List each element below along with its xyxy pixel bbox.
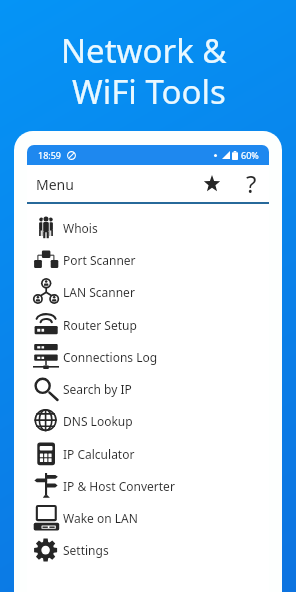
staticText: 60%: [241, 149, 259, 161]
button[interactable]: LAN Scanner: [27, 276, 269, 308]
staticText: IP & Host Converter: [63, 478, 175, 494]
staticText: LAN Scanner: [63, 284, 135, 300]
staticText: DNS Lookup: [63, 413, 133, 429]
button[interactable]: Help: [238, 171, 264, 197]
staticText: Wake on LAN: [63, 510, 138, 526]
staticText: Whois: [63, 220, 98, 236]
staticText: WiFi Tools: [72, 69, 226, 114]
staticText: Menu: [36, 175, 74, 194]
staticText: Port Scanner: [63, 252, 136, 268]
button[interactable]: Router Setup: [27, 309, 269, 341]
button[interactable]: DNS Lookup: [27, 405, 269, 437]
button[interactable]: IP Calculator: [27, 438, 269, 470]
staticText: Settings: [63, 542, 109, 558]
staticText: Search by IP: [63, 381, 132, 397]
button[interactable]: Settings: [27, 534, 269, 566]
staticText: ?: [246, 167, 257, 193]
button[interactable]: Search by IP: [27, 373, 269, 405]
staticText: Connections Log: [63, 349, 158, 365]
staticText: 18:59: [38, 149, 62, 161]
staticText: Network &: [61, 28, 227, 73]
button[interactable]: Port Scanner: [27, 244, 269, 276]
button[interactable]: Whois: [27, 212, 269, 244]
staticText: IP Calculator: [63, 446, 135, 462]
button[interactable]: Connections Log: [27, 341, 269, 373]
staticText: Router Setup: [63, 317, 137, 333]
button[interactable]: Favourites: [199, 171, 225, 197]
button[interactable]: Wake on LAN: [27, 502, 269, 534]
button[interactable]: IP & Host Converter: [27, 470, 269, 502]
